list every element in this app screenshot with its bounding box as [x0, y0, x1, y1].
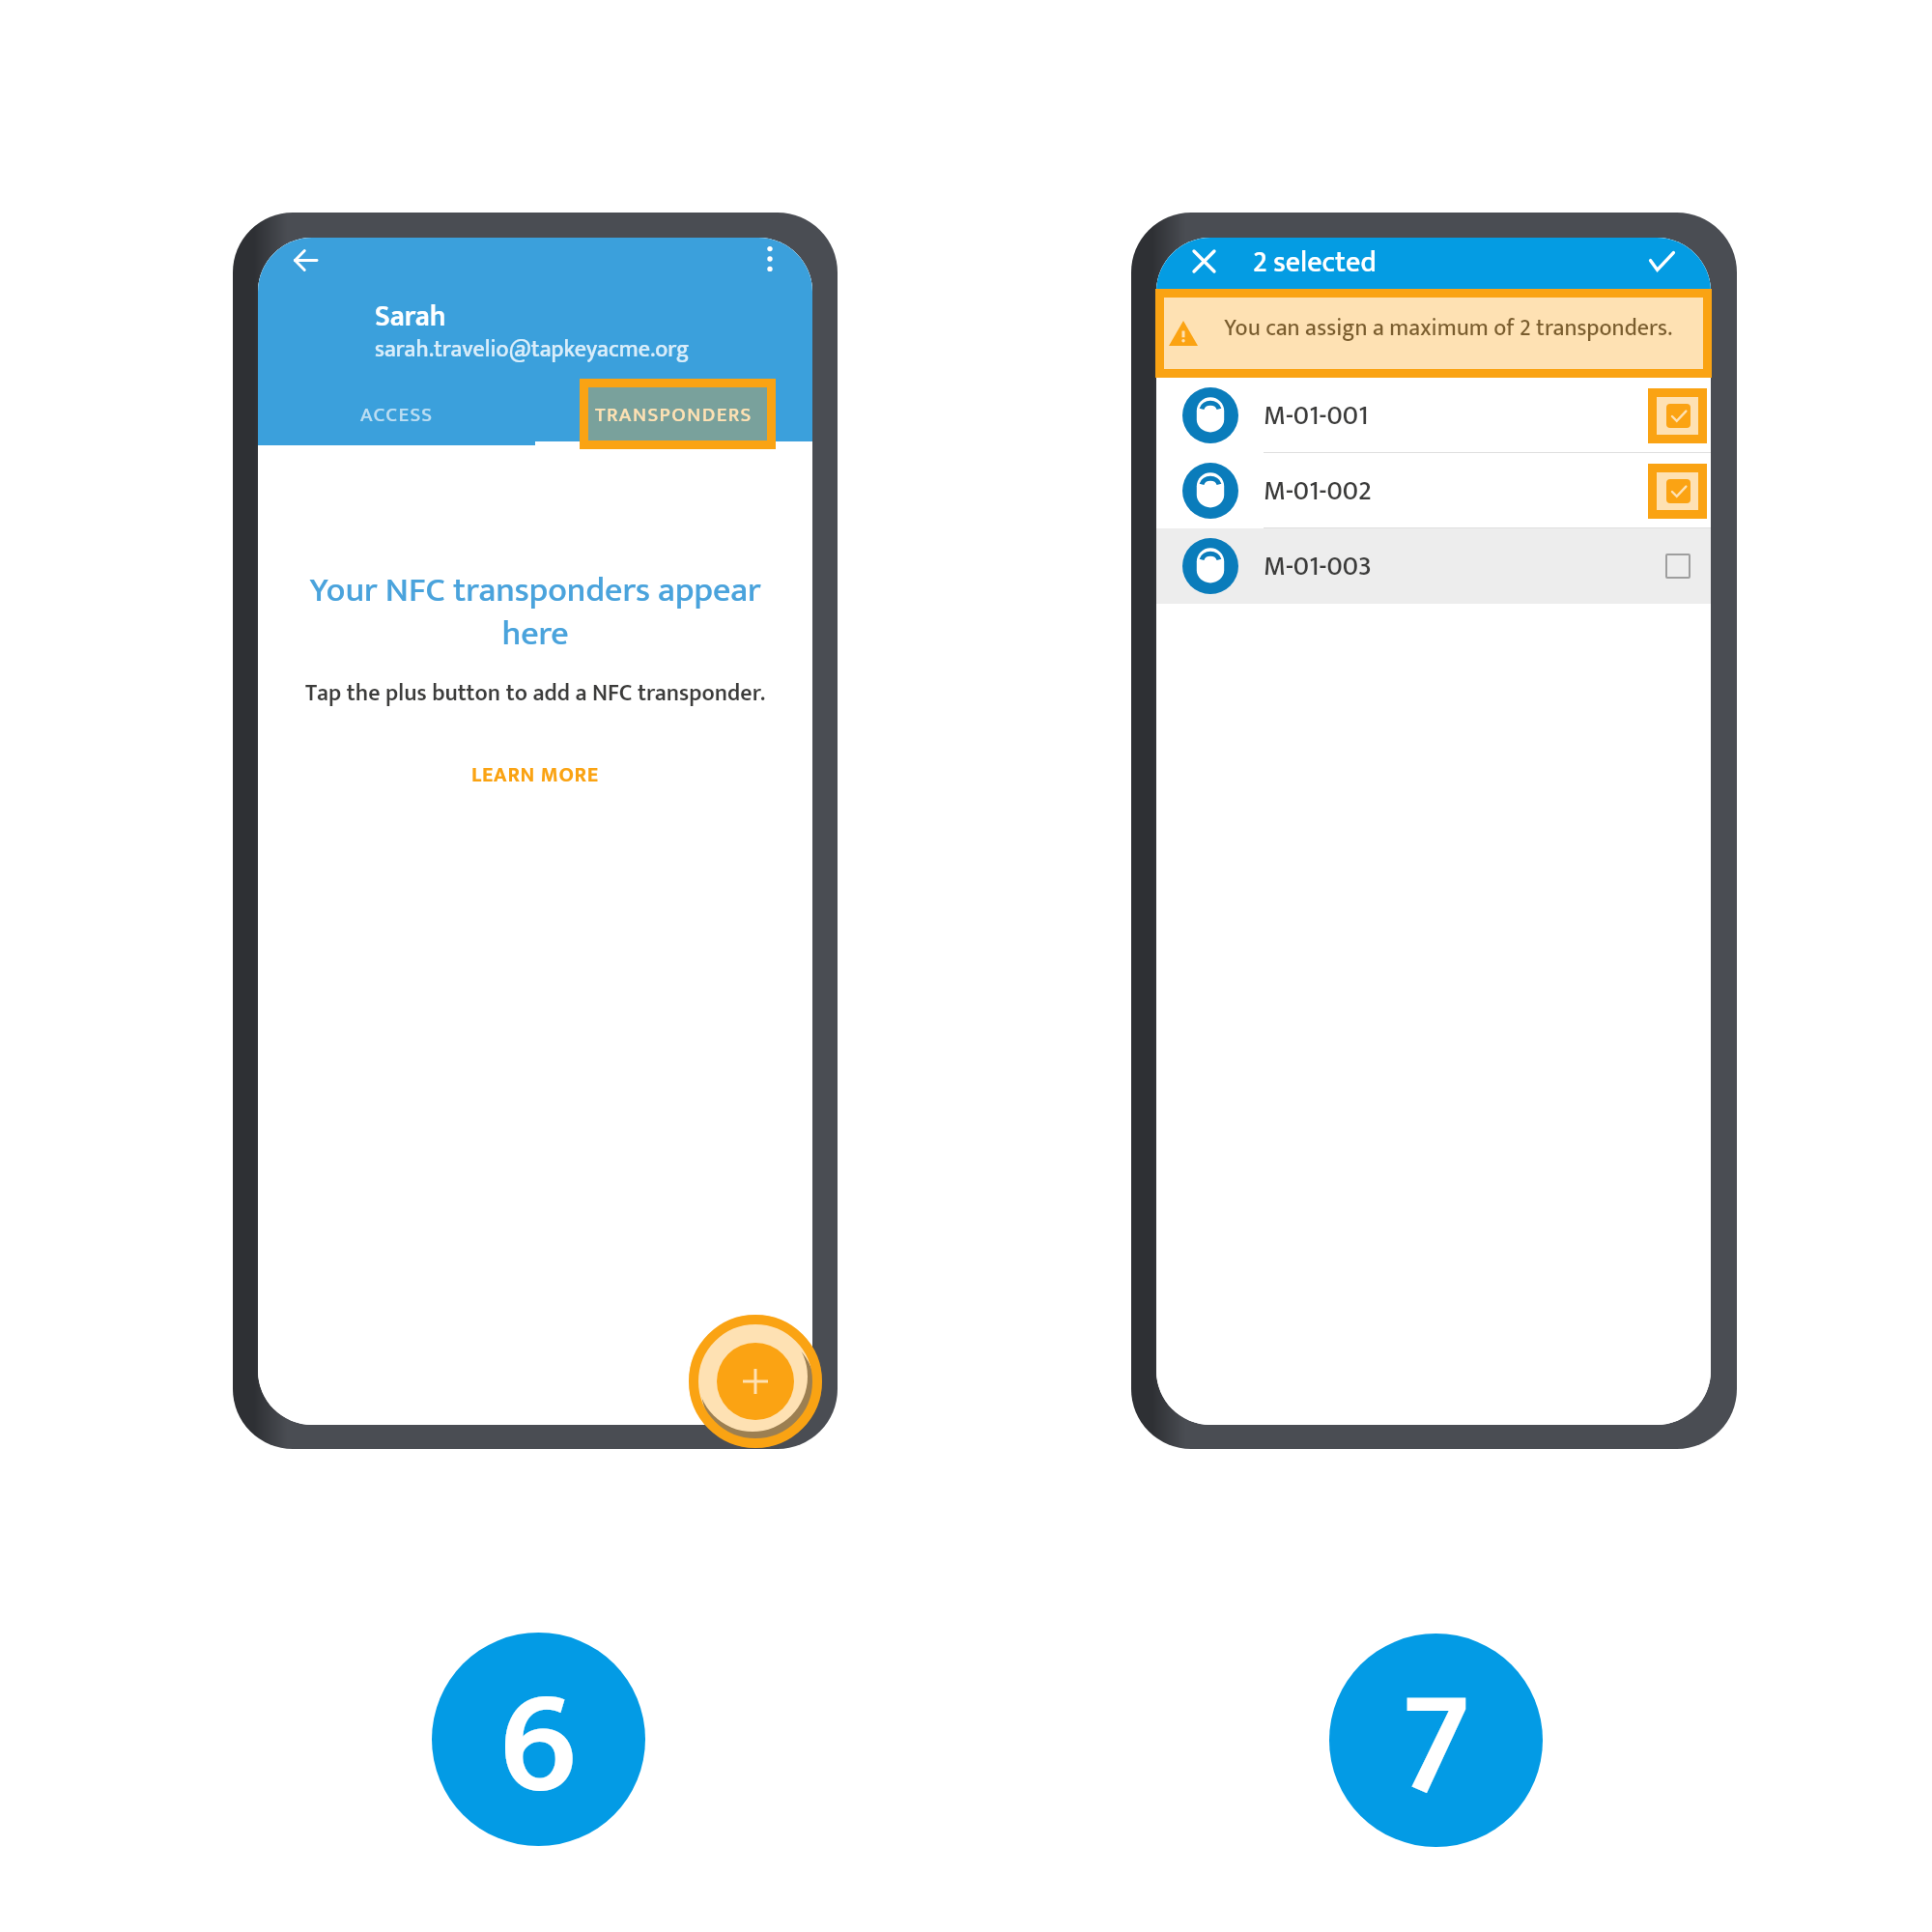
staticText: LEARN MORE [471, 757, 599, 793]
staticText: sarah.travelio@tapkeyacme.org [375, 330, 690, 369]
button[interactable]: Close [1169, 238, 1238, 296]
staticText: TRANSPONDERS [595, 398, 753, 432]
button[interactable]: M-01-001 [1156, 378, 1711, 453]
button[interactable]: Confirm selection [1627, 238, 1696, 296]
staticText: ACCESS [360, 398, 434, 432]
staticText: Tap the plus button to add a NFC transpo… [282, 674, 788, 713]
button[interactable]: M-01-003 [1156, 528, 1711, 604]
button[interactable]: M-01-002 [1156, 453, 1711, 528]
button[interactable]: Add transponder [717, 1343, 794, 1420]
staticText: M-01-003 [1264, 544, 1372, 589]
staticText: You can assign a maximum of 2 transponde… [1224, 309, 1673, 348]
button[interactable]: More options [735, 238, 805, 294]
button[interactable]: 6 [432, 1633, 645, 1846]
staticText: 2 selected [1253, 239, 1377, 287]
staticText: M-01-001 [1264, 393, 1369, 439]
staticText: 7 [1400, 1634, 1472, 1839]
staticText: 6 [499, 1633, 578, 1838]
staticText: Your NFC transponders appear here [277, 561, 793, 663]
button[interactable]: Back [270, 238, 340, 295]
button[interactable]: TRANSPONDERS [535, 388, 812, 441]
button[interactable]: Toggle selection [1659, 471, 1697, 510]
button[interactable]: ACCESS [258, 388, 535, 441]
button[interactable]: LEARN MORE [453, 755, 617, 794]
button[interactable]: Toggle selection [1659, 396, 1697, 435]
staticText: M-01-002 [1264, 469, 1372, 514]
staticText: Sarah [375, 293, 446, 341]
button[interactable]: Toggle selection [1659, 547, 1697, 585]
button[interactable]: 7 [1329, 1634, 1543, 1847]
